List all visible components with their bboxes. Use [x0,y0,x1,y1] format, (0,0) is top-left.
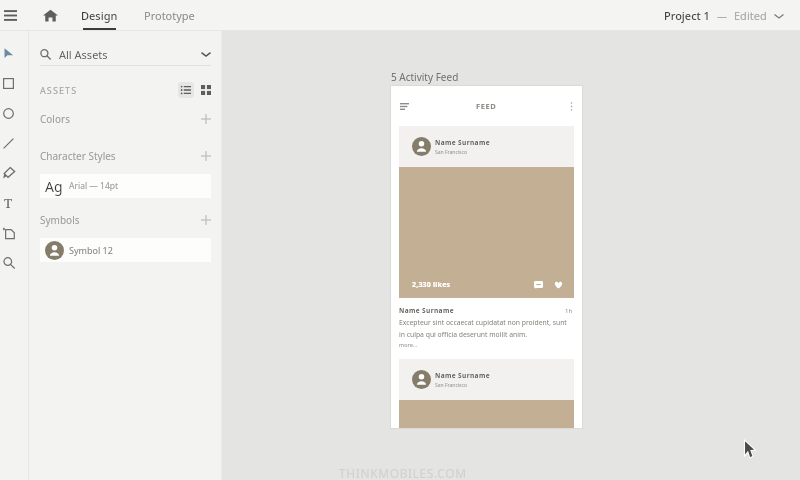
button[interactable]: All Assets [29,43,222,65]
button[interactable]: Text [0,188,17,218]
staticText: 1h [565,307,573,315]
button[interactable]: Artboard [0,218,17,248]
button[interactable]: Project 1 [654,0,800,31]
staticText: Design [81,8,118,23]
staticText: Colors [40,112,70,126]
staticText: Symbols [40,213,80,227]
staticText: Name Surname [435,371,490,380]
button[interactable]: Name Surname [399,359,574,400]
button[interactable]: Grid view [201,85,211,95]
button[interactable]: Like [553,280,563,290]
staticText: — [717,9,727,23]
staticText: All Assets [59,47,108,62]
staticText: T [4,194,13,212]
staticText: San Francisco [435,149,467,156]
staticText: Excepteur sint occaecat cupidatat non pr… [399,318,573,339]
button[interactable]: Prototype [141,0,198,31]
staticText: Project 1 [664,8,710,23]
staticText: 2,330 likes [412,280,451,290]
button[interactable]: Home [40,0,61,31]
button[interactable]: Rectangle [0,68,17,98]
button[interactable]: List view [178,82,194,98]
staticText: ASSETS [40,84,78,96]
button[interactable]: Symbol 12 [40,238,211,262]
staticText: Arial — 14pt [69,180,119,192]
staticText: THINKMOBILES.COM [339,465,467,480]
button[interactable]: Design [78,0,121,31]
staticText: Prototype [144,8,195,23]
button[interactable]: Name Surname [399,126,574,167]
staticText: Edited [734,8,767,23]
button[interactable]: Ellipse [0,98,17,128]
button[interactable]: More options [559,99,573,113]
button[interactable]: Symbols [29,212,222,228]
button[interactable]: Colors [29,111,222,127]
button[interactable]: Comment [533,280,543,290]
staticText: Symbol 12 [69,244,113,256]
staticText: 5 Activity Feed [391,70,459,84]
button[interactable]: Select [0,38,17,68]
staticText: Ag [45,177,63,196]
button[interactable]: Menu [0,0,21,31]
button[interactable]: Ag [40,174,211,198]
button[interactable]: Zoom [0,248,17,278]
button[interactable]: Pen [0,158,17,188]
button[interactable]: Line [0,128,17,158]
staticText: FEED [476,101,497,111]
staticText: Character Styles [40,149,116,163]
staticText: Name Surname [399,306,454,315]
staticText: Name Surname [435,138,490,147]
button[interactable]: Character Styles [29,148,222,164]
button[interactable]: Menu [400,99,414,113]
staticText: San Francisco [435,382,467,389]
staticText: more... [399,341,418,348]
